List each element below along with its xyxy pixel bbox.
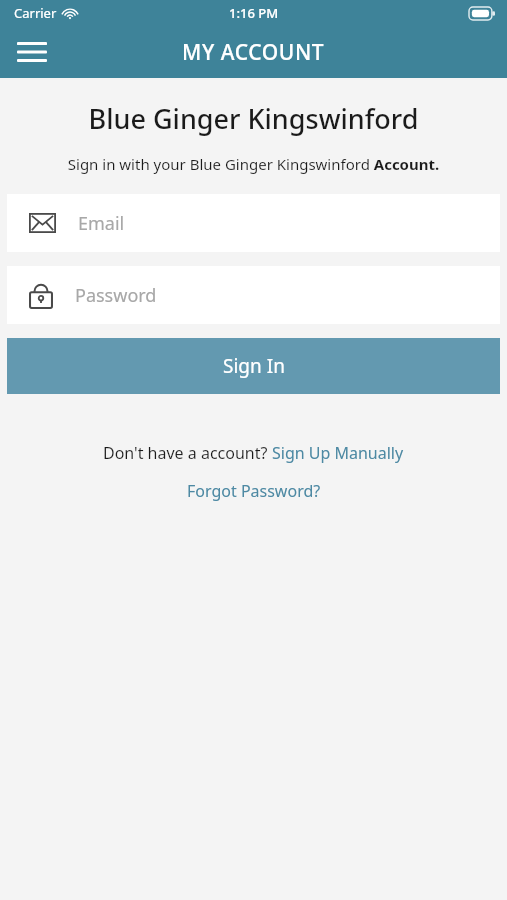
staticText: Carrier xyxy=(14,4,57,22)
staticText: Sign in with your Blue Ginger Kingswinfo… xyxy=(0,154,507,174)
staticText: Sign In xyxy=(223,353,285,379)
staticText: 1:16 PM xyxy=(229,4,279,22)
button[interactable]: Open navigation menu xyxy=(8,28,56,76)
staticText: Sign Up Manually xyxy=(272,442,404,464)
staticText: Blue Ginger Kingswinford xyxy=(0,100,507,137)
staticText: MY ACCOUNT xyxy=(182,38,325,67)
button[interactable]: Password xyxy=(7,266,500,324)
staticText: Password xyxy=(75,283,157,308)
staticText: Email xyxy=(78,211,125,236)
staticText: Don't have a account? xyxy=(103,442,272,464)
button[interactable]: Sign Up Manually xyxy=(272,442,404,464)
button[interactable]: Email xyxy=(7,194,500,252)
button[interactable]: Forgot Password? xyxy=(187,480,321,502)
staticText: Forgot Password? xyxy=(187,480,321,502)
button[interactable]: Sign In xyxy=(7,338,500,394)
